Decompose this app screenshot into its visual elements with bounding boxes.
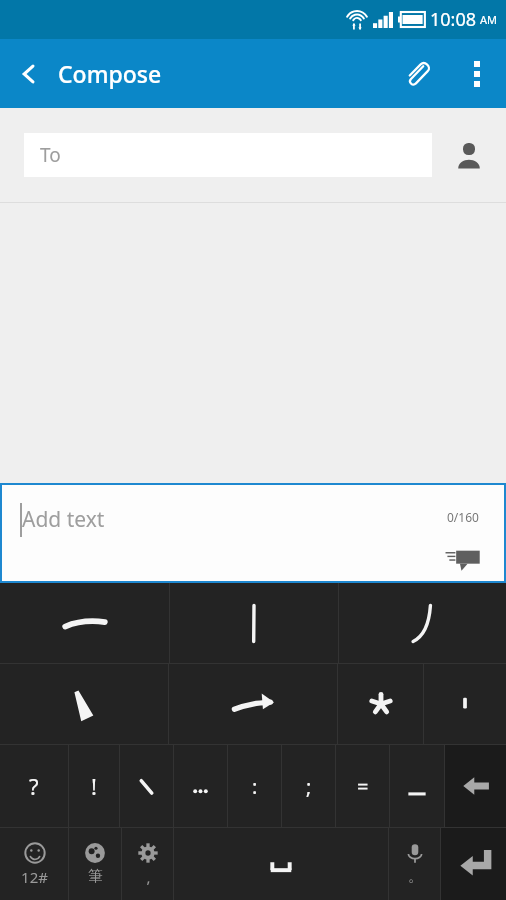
- button[interactable]: Stroke pie: [339, 583, 506, 663]
- button[interactable]: =: [336, 745, 389, 827]
- staticText: To: [40, 142, 61, 168]
- staticText: 。: [408, 867, 423, 886]
- button[interactable]: !: [69, 745, 119, 827]
- button[interactable]: ;: [282, 745, 335, 827]
- staticText: 筆: [88, 867, 103, 886]
- button[interactable]: Attach: [386, 39, 448, 108]
- staticText: :: [252, 773, 258, 800]
- staticText: ,: [146, 867, 151, 887]
- button[interactable]: Wildcard: [338, 664, 423, 744]
- staticText: ;: [306, 773, 312, 800]
- button[interactable]: More options: [448, 39, 506, 108]
- button[interactable]: Underscore: [390, 745, 444, 827]
- button[interactable]: Stroke heng: [0, 583, 169, 663]
- staticText: 12#: [21, 867, 48, 887]
- staticText: 0/160: [447, 509, 479, 525]
- button[interactable]: ?: [0, 745, 68, 827]
- button[interactable]: Settings: [122, 828, 173, 900]
- button[interactable]: Voice input: [389, 828, 440, 900]
- button[interactable]: Switch language: [69, 828, 121, 900]
- staticText: =: [357, 773, 369, 800]
- staticText: Add text: [22, 505, 105, 534]
- button[interactable]: Space: [174, 828, 388, 900]
- staticText: AM: [480, 12, 498, 27]
- button[interactable]: To: [24, 133, 432, 177]
- button[interactable]: Back: [0, 39, 58, 108]
- button[interactable]: :: [228, 745, 281, 827]
- button[interactable]: Dun comma: [120, 745, 173, 827]
- button[interactable]: Message type: [420, 534, 506, 583]
- button[interactable]: Backspace: [445, 745, 506, 827]
- staticText: !: [91, 771, 97, 801]
- button[interactable]: Enter: [441, 828, 506, 900]
- staticText: 10:08: [430, 7, 477, 32]
- staticText: Compose: [58, 58, 162, 89]
- button[interactable]: Ellipsis: [174, 745, 227, 827]
- staticText: ?: [29, 771, 39, 801]
- button[interactable]: Stroke shu: [170, 583, 338, 663]
- button[interactable]: Stroke dian: [0, 664, 168, 744]
- button[interactable]: Stroke zhe: [169, 664, 337, 744]
- button[interactable]: Emoji and numbers: [0, 828, 68, 900]
- button[interactable]: Separator: [424, 664, 506, 744]
- button[interactable]: Add text: [0, 483, 506, 583]
- button[interactable]: Pick contact: [432, 108, 506, 202]
